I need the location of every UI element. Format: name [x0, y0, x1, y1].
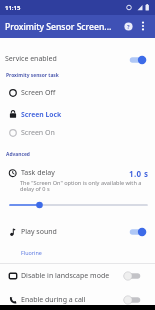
staticText: Proximity Sensor Screen...: [5, 21, 112, 33]
staticText: The "Screen On" option is only available…: [20, 179, 142, 193]
button[interactable]: [137, 19, 149, 33]
button[interactable]: [0, 104, 155, 124]
button[interactable]: [0, 124, 155, 143]
staticText: Screen On: [21, 128, 55, 138]
button[interactable]: [123, 271, 141, 281]
button[interactable]: [123, 295, 141, 305]
button[interactable]: [0, 220, 155, 244]
staticText: Service enabled: [5, 54, 57, 64]
button[interactable]: [0, 40, 155, 70]
button[interactable]: [0, 199, 155, 211]
staticText: 1.0 s: [129, 168, 149, 178]
staticText: Task delay: [21, 168, 55, 178]
button[interactable]: [129, 227, 147, 237]
staticText: Fluorine: [21, 249, 42, 256]
staticText: 11:15: [5, 4, 21, 12]
staticText: Advanced: [6, 151, 30, 158]
button[interactable]: [0, 84, 155, 103]
staticText: Enable during a call: [21, 295, 86, 305]
staticText: Play sound: [21, 227, 57, 237]
staticText: Screen Lock: [21, 110, 62, 119]
button[interactable]: [0, 162, 155, 196]
staticText: Disable in landscape mode: [21, 271, 110, 281]
button[interactable]: 1.0 s: [112, 168, 149, 178]
staticText: ?: [127, 23, 130, 30]
button[interactable]: [0, 288, 155, 305]
button[interactable]: [129, 55, 147, 65]
staticText: Screen Off: [21, 88, 56, 98]
button[interactable]: [0, 244, 155, 260]
button[interactable]: [0, 264, 155, 287]
button[interactable]: ?: [121, 19, 135, 33]
staticText: Proximity sensor task: [6, 72, 59, 79]
